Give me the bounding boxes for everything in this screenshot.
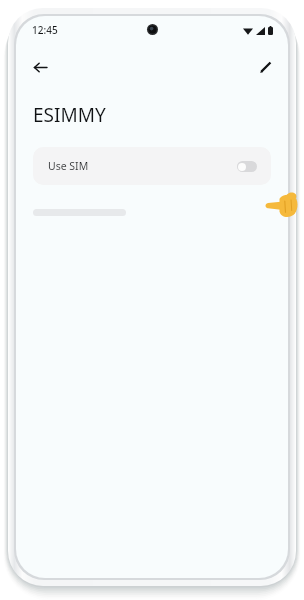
button[interactable]: Tap here <box>265 191 298 219</box>
button[interactable]: Back <box>23 50 57 84</box>
button[interactable]: Use SIM toggle, off <box>237 161 257 172</box>
button[interactable]: Use SIM <box>33 147 271 185</box>
staticText: ESIMMY <box>33 102 106 128</box>
staticText: Use SIM <box>48 159 89 173</box>
button[interactable]: Edit <box>248 50 282 84</box>
staticText: 12:45 <box>32 23 58 37</box>
